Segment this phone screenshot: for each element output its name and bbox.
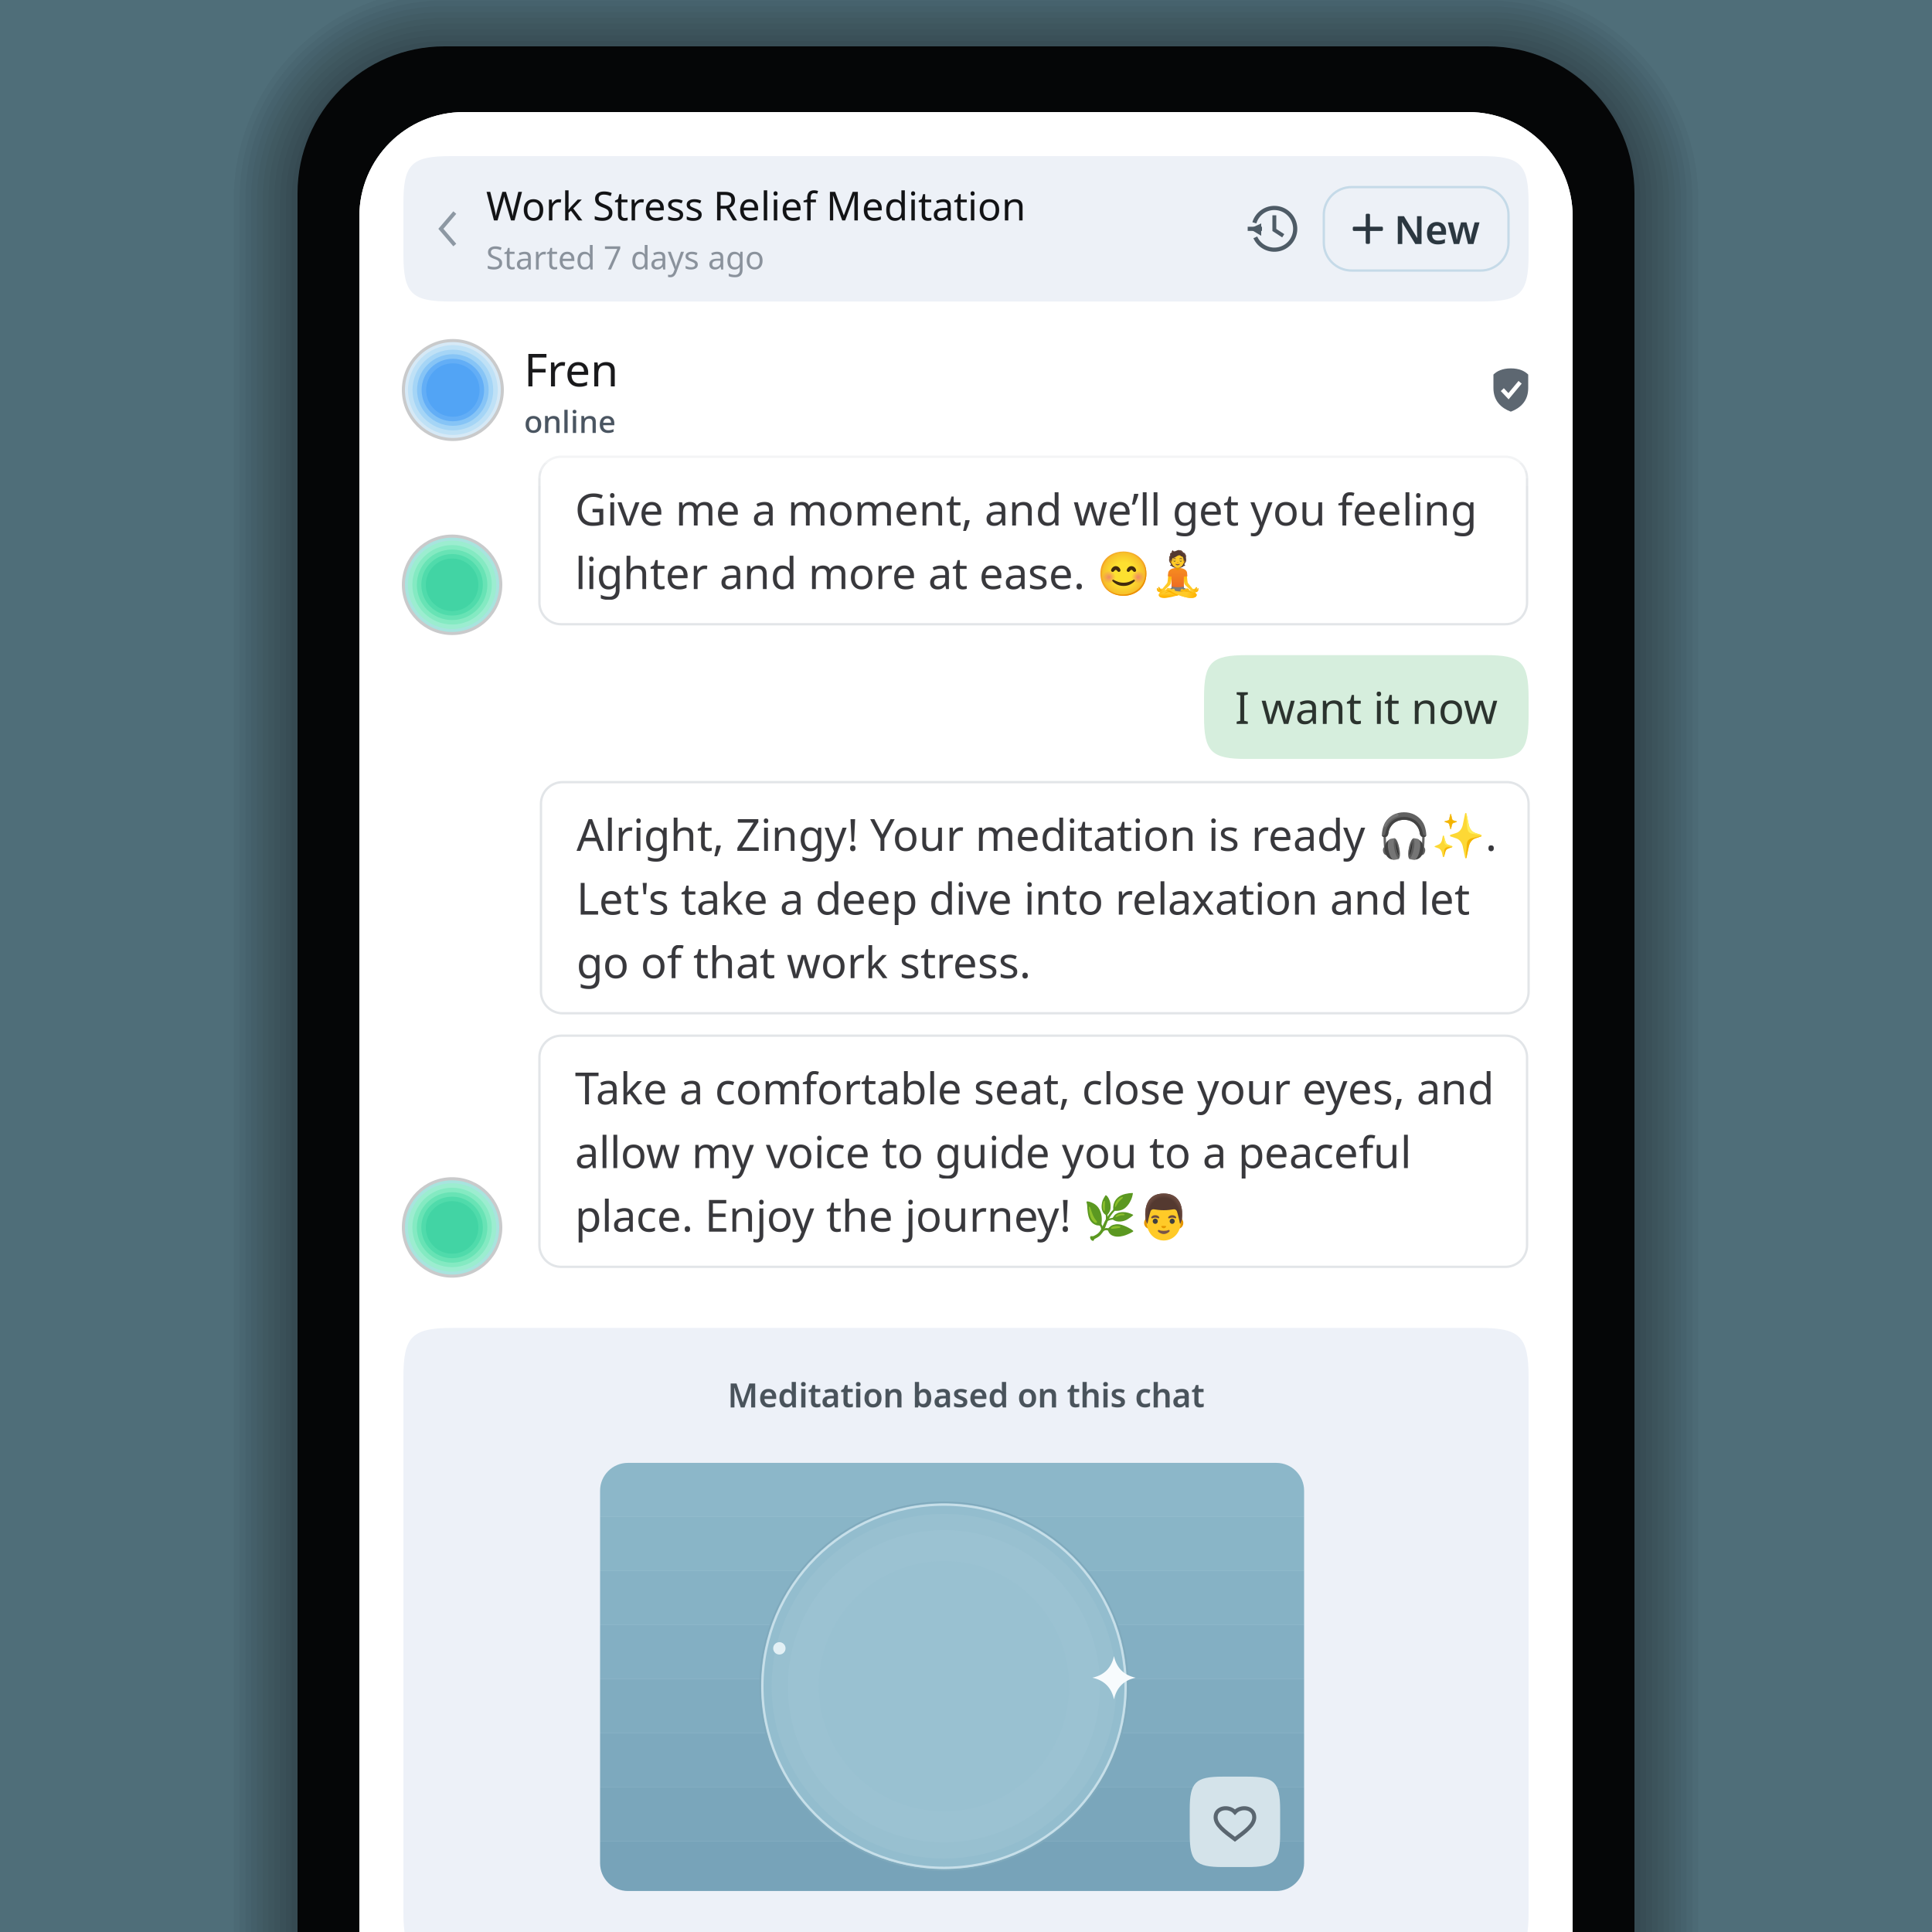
button[interactable]: Back (410, 189, 486, 269)
staticText: Give me a moment, and we’ll get you feel… (575, 480, 1477, 601)
staticText: Work Stress Relief Meditation (486, 179, 1026, 231)
staticText: Started 7 days ago (486, 236, 764, 278)
staticText: I want it now (1235, 678, 1498, 736)
staticText: online (524, 400, 616, 441)
button[interactable]: History (1247, 189, 1302, 269)
button[interactable]: Favorite (1190, 1777, 1280, 1867)
staticText: Alright, Zingy! Your meditation is ready… (577, 805, 1497, 990)
staticText: Meditation based on this chat (728, 1373, 1204, 1417)
staticText: Take a comfortable seat, close your eyes… (575, 1059, 1494, 1244)
staticText: Fren (524, 339, 618, 399)
button[interactable]: New (1324, 187, 1509, 271)
staticText: New (1394, 203, 1480, 255)
